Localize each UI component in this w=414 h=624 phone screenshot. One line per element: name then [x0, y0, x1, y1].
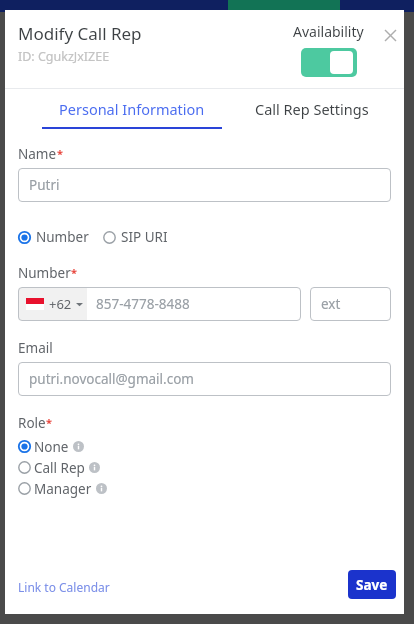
- staticText: Call Rep: [34, 459, 85, 477]
- button[interactable]: Number: [18, 228, 89, 246]
- staticText: ID: CgukzJxIZEE: [18, 48, 110, 65]
- staticText: Save: [356, 576, 388, 594]
- button[interactable]: Close: [377, 22, 403, 48]
- staticText: Personal Information: [59, 99, 205, 119]
- button[interactable]: Save: [348, 570, 396, 599]
- staticText: Role: [18, 414, 46, 432]
- button[interactable]: ext: [310, 287, 391, 321]
- button[interactable]: Call Rep Settings: [237, 89, 387, 133]
- staticText: ext: [321, 295, 341, 313]
- button[interactable]: None: [18, 436, 84, 457]
- staticText: *: [57, 146, 63, 161]
- button[interactable]: +62: [18, 287, 301, 321]
- button[interactable]: putri.novocall@gmail.com: [18, 362, 391, 396]
- staticText: putri.novocall@gmail.com: [29, 370, 194, 388]
- staticText: Number: [18, 264, 71, 282]
- button[interactable]: Manager: [18, 478, 107, 499]
- staticText: Manager: [34, 480, 92, 498]
- staticText: Number: [36, 228, 89, 246]
- button[interactable]: Availability toggle: [301, 48, 357, 77]
- staticText: *: [71, 265, 77, 280]
- staticText: 857-4778-8488: [96, 295, 190, 313]
- button[interactable]: SIP URI: [103, 228, 168, 246]
- staticText: Putri: [29, 176, 60, 194]
- staticText: Modify Call Rep: [18, 22, 142, 45]
- button[interactable]: Link to Calendar: [18, 579, 110, 595]
- staticText: Link to Calendar: [18, 579, 110, 595]
- staticText: None: [34, 438, 69, 456]
- staticText: Email: [18, 339, 53, 357]
- button[interactable]: Putri: [18, 168, 391, 202]
- button[interactable]: Call Rep: [18, 457, 100, 478]
- staticText: +62: [49, 295, 72, 313]
- staticText: SIP URI: [121, 228, 168, 246]
- staticText: Call Rep Settings: [255, 99, 369, 119]
- staticText: *: [46, 415, 52, 430]
- staticText: Name: [18, 145, 57, 163]
- staticText: Availability: [293, 22, 364, 41]
- button[interactable]: Personal Information: [42, 89, 222, 133]
